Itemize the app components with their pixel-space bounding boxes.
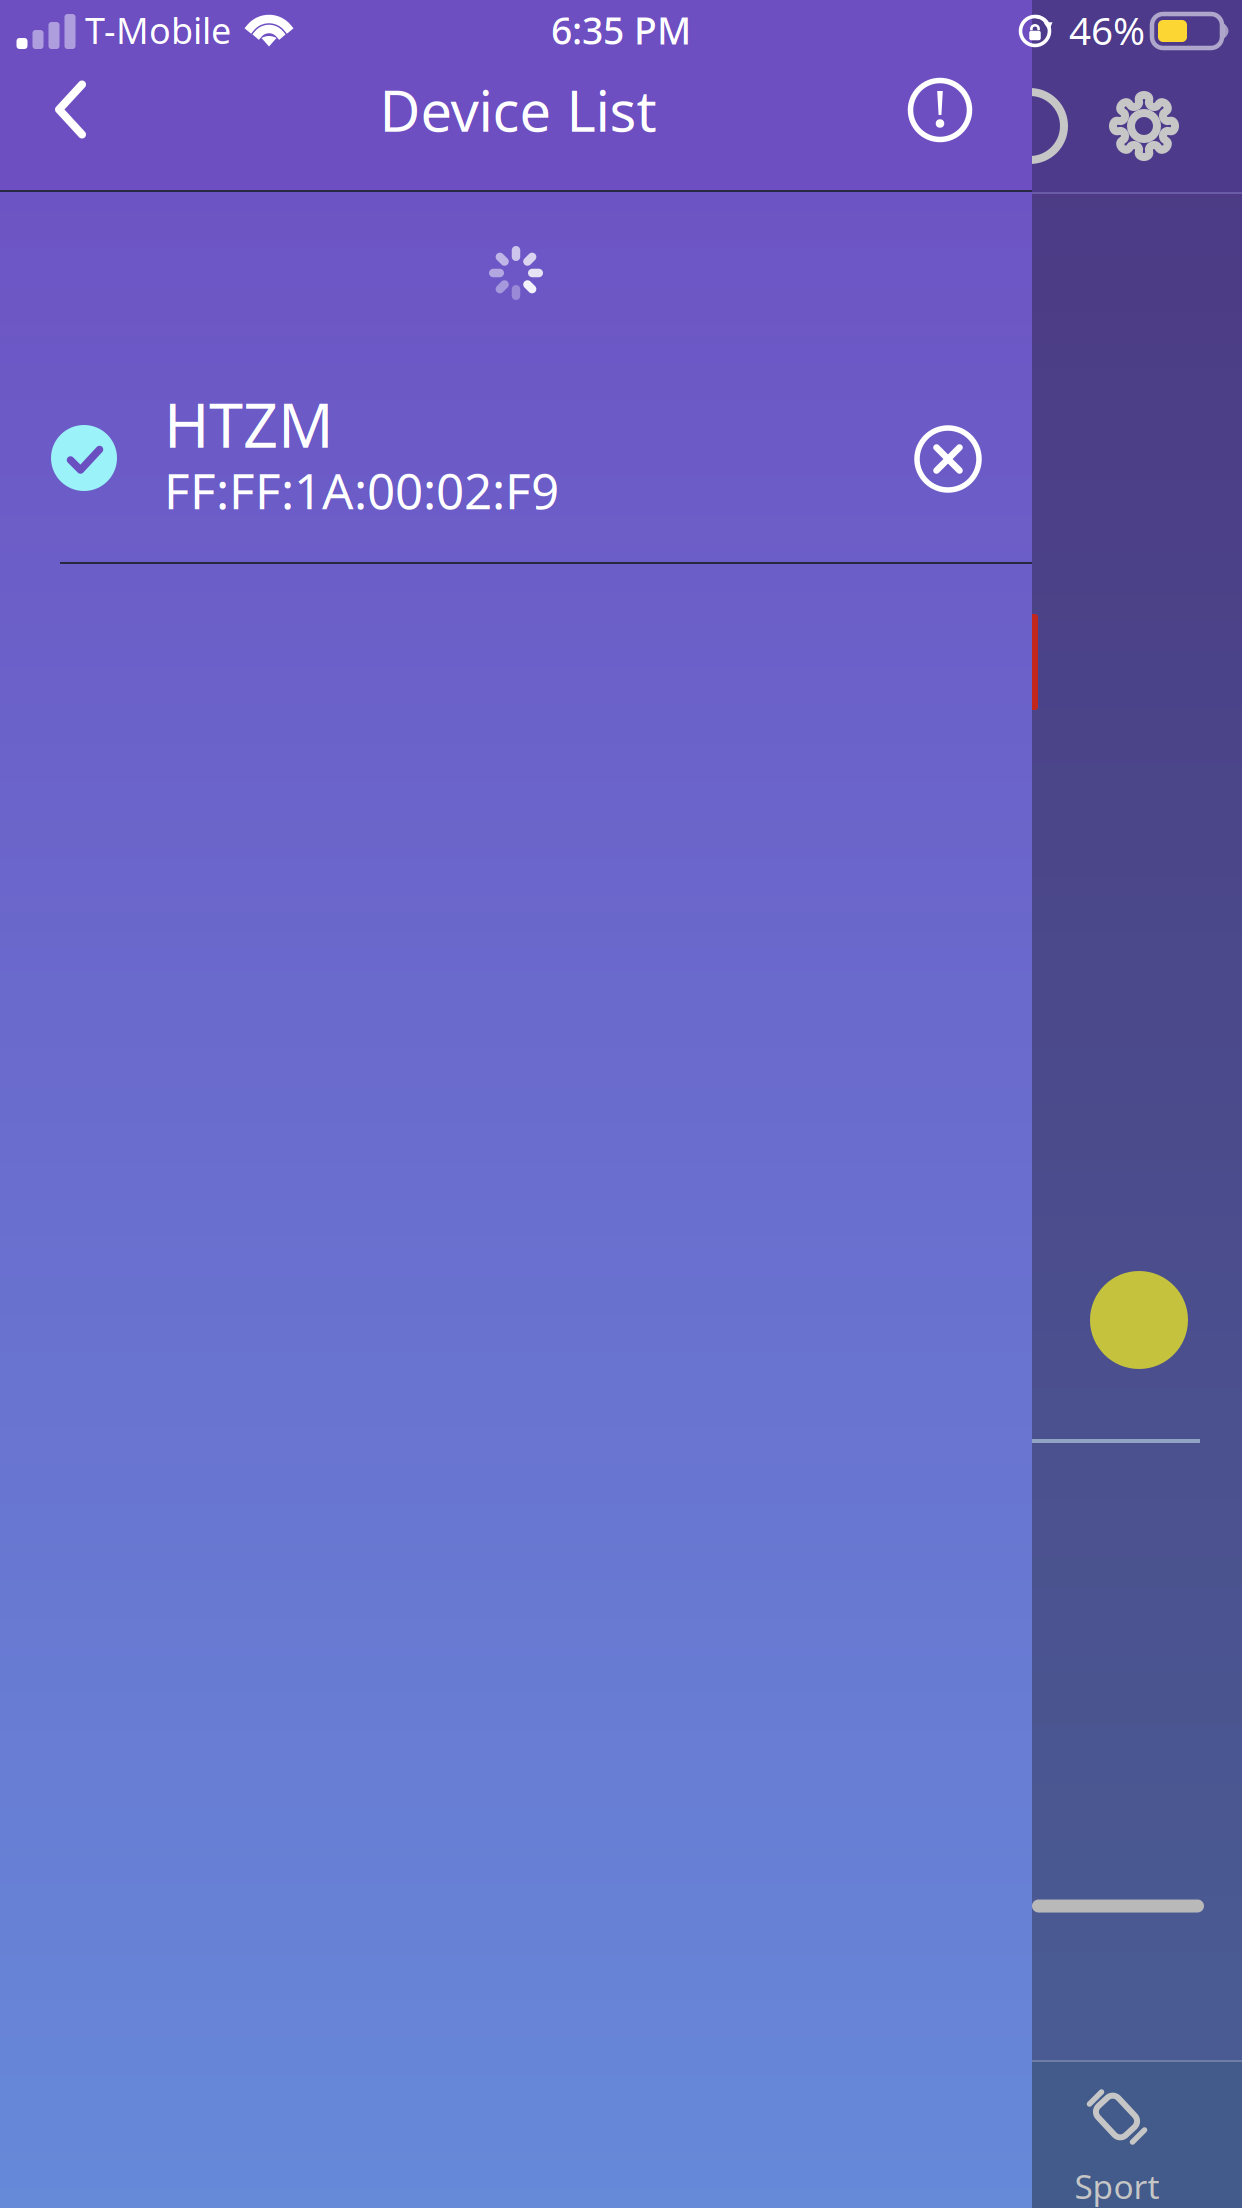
button[interactable]: Information	[880, 45, 1000, 175]
staticText: 46%	[1069, 4, 1145, 56]
staticText: HTZM	[164, 383, 334, 465]
staticText: FF:FF:1A:00:02:F9	[164, 457, 559, 523]
staticText: 6:35 PM	[551, 5, 691, 55]
staticText: Sport	[1074, 2164, 1159, 2208]
button[interactable]: HTZM	[0, 358, 1032, 558]
staticText: T-Mobile	[85, 6, 231, 54]
button[interactable]: Settings	[1082, 60, 1206, 192]
button[interactable]: Back	[11, 45, 131, 175]
staticText: Device List	[379, 73, 656, 147]
button[interactable]: Sport	[1032, 2088, 1202, 2208]
